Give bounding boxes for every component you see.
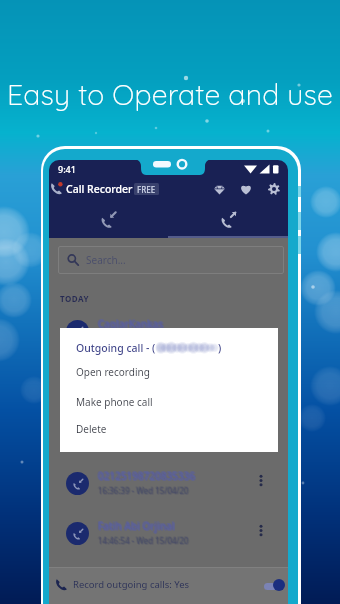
staticText: 02125198720835336 — [98, 468, 196, 482]
staticText: Open recording — [76, 365, 150, 379]
button[interactable]: CaglarKankas — [49, 309, 288, 359]
staticText: 16:36:39 - Wed 15/04/20 — [98, 486, 189, 497]
button[interactable]: Premium — [209, 179, 229, 199]
staticText: 16:36:39 - Wed 15/04/20 — [98, 485, 189, 496]
staticText: CaglarKankas — [98, 316, 164, 330]
staticText: Fatih Abi Orjinal — [99, 519, 176, 533]
staticText: CaglarKankas — [98, 317, 164, 331]
button[interactable]: Fatih Abi Orjinal — [49, 511, 288, 561]
button[interactable]: Search... — [58, 246, 284, 274]
staticText: 14:46:54 - Wed 15/04/20 — [99, 536, 190, 547]
staticText: Fatih Abi Orjinal — [98, 519, 175, 533]
staticText: CaglarKankas — [99, 318, 165, 332]
staticText: Fatih Abi Orjinal — [97, 519, 174, 533]
staticText: 16:36:39 - Wed 15/04/20 — [97, 485, 188, 496]
staticText: 14:46:54 - Wed 15/04/20 — [98, 535, 189, 546]
staticText: 9:41 — [58, 163, 76, 175]
staticText: 14:46:54 - Wed 15/04/20 — [97, 535, 188, 546]
staticText: Record outgoing calls: Yes — [73, 578, 190, 591]
button[interactable]: Favorites — [236, 179, 256, 199]
staticText: 14:46:54 - Wed 15/04/20 — [99, 535, 190, 546]
staticText: Outgoing call - ( — [76, 341, 156, 355]
staticText: Easy to Operate and use — [0, 76, 340, 112]
button[interactable]: More options — [253, 522, 269, 538]
button[interactable]: Delete — [60, 416, 278, 442]
button[interactable]: Record outgoing calls: Yes — [49, 567, 288, 604]
staticText: Fatih Abi Orjinal — [98, 520, 175, 534]
staticText: Fatih Abi Orjinal — [97, 518, 174, 532]
button[interactable]: Open recording — [60, 359, 278, 385]
staticText: Call Recorder — [66, 182, 133, 196]
staticText: FREE — [137, 184, 156, 195]
staticText: 16:36:39 - Wed 15/04/20 — [98, 484, 189, 495]
button[interactable]: Outgoing calls — [168, 200, 288, 238]
staticText: Search... — [86, 253, 126, 267]
staticText: CaglarKankas — [97, 317, 163, 331]
staticText: 02125198720835336 — [97, 468, 195, 482]
staticText: CaglarKankas — [99, 317, 165, 331]
staticText: ) — [218, 341, 222, 355]
staticText: CaglarKankas — [97, 316, 163, 330]
button[interactable]: Make phone call — [60, 389, 278, 415]
staticText: Make phone call — [76, 395, 153, 409]
staticText: Fatih Abi Orjinal — [99, 520, 176, 534]
button[interactable]: More options — [253, 472, 269, 488]
button[interactable]: Settings — [264, 179, 284, 199]
staticText: Fatih Abi Orjinal — [98, 518, 175, 532]
staticText: 02125198720835336 — [99, 469, 197, 483]
staticText: 14:46:54 - Wed 15/04/20 — [98, 536, 189, 547]
staticText: 14:46:54 - Wed 15/04/20 — [98, 534, 189, 545]
staticText: 02125198720835336 — [98, 470, 196, 484]
button[interactable]: 02125198720835336 — [49, 461, 288, 511]
staticText: 02125198720835336 — [98, 469, 196, 483]
staticText: 16:36:39 - Wed 15/04/20 — [99, 485, 190, 496]
staticText: 16:36:39 - Wed 15/04/20 — [99, 486, 190, 497]
staticText: Delete — [76, 422, 107, 436]
staticText: 14:46:54 - Wed 15/04/20 — [97, 534, 188, 545]
staticText: 02125198720835336 — [97, 469, 195, 483]
staticText: 02125198720835336 — [99, 470, 197, 484]
staticText: CaglarKankas — [98, 318, 164, 332]
button[interactable]: Record outgoing calls toggle — [264, 578, 285, 592]
staticText: TODAY — [60, 293, 90, 304]
staticText: 16:36:39 - Wed 15/04/20 — [97, 484, 188, 495]
button[interactable]: Incoming calls — [49, 200, 168, 238]
